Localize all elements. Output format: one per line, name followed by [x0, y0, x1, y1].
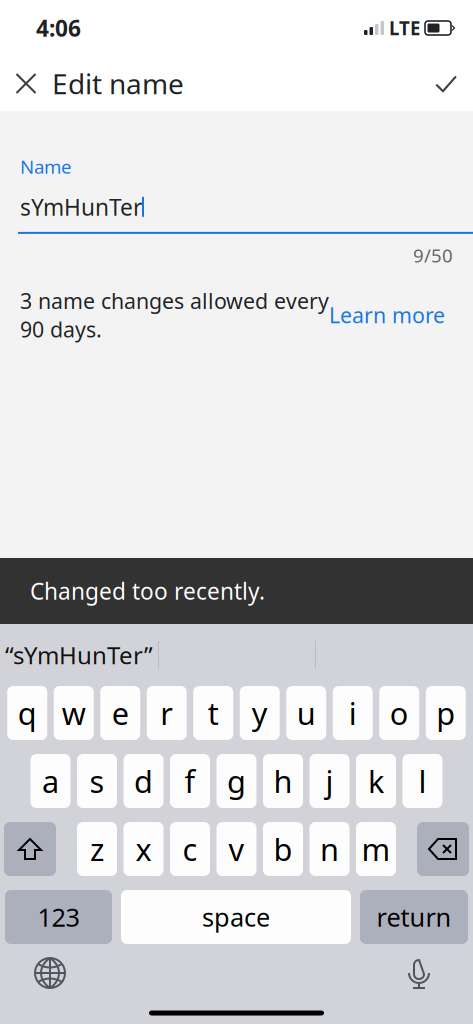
button[interactable]: y: [240, 686, 280, 740]
staticText: w: [62, 693, 86, 733]
staticText: 9/50: [413, 243, 453, 268]
button[interactable]: 123: [5, 890, 112, 944]
staticText: 4:06: [36, 13, 81, 43]
button[interactable]: Delete: [417, 822, 469, 876]
staticText: h: [273, 761, 292, 801]
button[interactable]: return: [360, 890, 468, 944]
button[interactable]: z: [77, 822, 117, 876]
staticText: r: [160, 693, 173, 733]
staticText: Learn more: [329, 301, 445, 329]
button[interactable]: x: [123, 822, 163, 876]
button[interactable]: w: [54, 686, 94, 740]
button[interactable]: n: [309, 822, 349, 876]
button[interactable]: c: [170, 822, 210, 876]
staticText: o: [390, 693, 409, 733]
button[interactable]: s: [77, 754, 117, 808]
button[interactable]: e: [100, 686, 140, 740]
button[interactable]: j: [309, 754, 349, 808]
staticText: e: [112, 693, 129, 733]
button[interactable]: v: [216, 822, 256, 876]
button[interactable]: l: [402, 754, 442, 808]
staticText: Edit name: [52, 65, 184, 102]
button[interactable]: Save: [419, 56, 473, 111]
button[interactable]: h: [263, 754, 303, 808]
staticText: g: [227, 761, 246, 801]
button[interactable]: “sYmHunTer”: [0, 632, 158, 678]
button[interactable]: r: [147, 686, 187, 740]
button[interactable]: k: [356, 754, 396, 808]
staticText: Name: [20, 154, 72, 179]
button[interactable]: Shift: [4, 822, 56, 876]
button[interactable]: t: [193, 686, 233, 740]
staticText: f: [184, 761, 195, 801]
staticText: x: [135, 829, 151, 869]
staticText: n: [320, 829, 339, 869]
staticText: v: [228, 829, 244, 869]
button[interactable]: d: [123, 754, 163, 808]
staticText: Changed too recently.: [30, 576, 265, 606]
button[interactable]: p: [426, 686, 466, 740]
staticText: a: [42, 761, 59, 801]
staticText: “sYmHunTer”: [5, 639, 153, 671]
staticText: j: [325, 761, 333, 801]
staticText: q: [18, 693, 37, 733]
staticText: m: [361, 829, 390, 869]
button[interactable]: m: [356, 822, 396, 876]
staticText: space: [202, 900, 270, 934]
button[interactable]: space: [121, 890, 351, 944]
staticText: s: [89, 761, 104, 801]
button[interactable]: q: [7, 686, 47, 740]
button[interactable]: i: [333, 686, 373, 740]
button[interactable]: Close: [0, 56, 52, 111]
staticText: i: [349, 693, 357, 733]
staticText: k: [368, 761, 384, 801]
staticText: c: [182, 829, 197, 869]
button[interactable]: b: [263, 822, 303, 876]
staticText: 123: [37, 900, 79, 934]
staticText: LTE: [389, 16, 420, 40]
staticText: 3 name changes allowed every 90 days.: [20, 287, 329, 343]
staticText: u: [297, 693, 316, 733]
staticText: p: [436, 693, 455, 733]
staticText: l: [418, 761, 426, 801]
staticText: t: [208, 693, 219, 733]
staticText: sYmHunTer: [20, 192, 142, 222]
staticText: z: [90, 829, 104, 869]
button[interactable]: u: [286, 686, 326, 740]
button[interactable]: o: [379, 686, 419, 740]
button[interactable]: a: [30, 754, 70, 808]
button[interactable]: Next keyboard: [26, 949, 74, 997]
staticText: b: [273, 829, 292, 869]
button[interactable]: Dictate: [395, 949, 443, 997]
staticText: return: [376, 900, 451, 934]
button[interactable]: g: [216, 754, 256, 808]
button[interactable]: Edit name: [52, 56, 184, 111]
staticText: d: [134, 761, 153, 801]
staticText: y: [252, 693, 268, 733]
button[interactable]: f: [170, 754, 210, 808]
button[interactable]: Learn more: [329, 301, 445, 329]
